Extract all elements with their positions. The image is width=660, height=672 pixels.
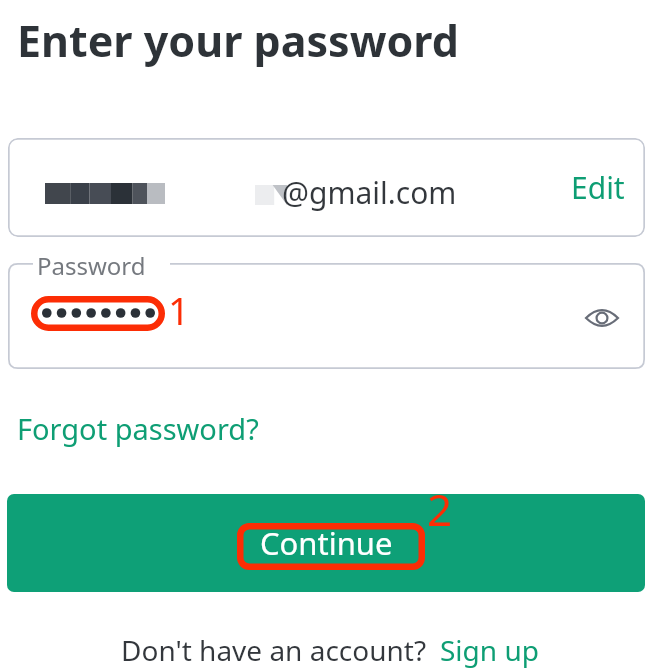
staticText: Enter your password — [17, 11, 459, 70]
button[interactable]: @gmail.com — [8, 138, 645, 237]
staticText: 2 — [427, 479, 453, 539]
staticText: Continue — [260, 522, 393, 564]
button[interactable]: Forgot password? — [8, 401, 268, 456]
staticText: Sign up — [440, 631, 539, 669]
button[interactable]: Edit — [551, 151, 645, 224]
button[interactable]: Show password — [578, 294, 626, 342]
staticText: Password — [37, 249, 146, 282]
staticText: @gmail.com — [282, 172, 457, 213]
button[interactable]: Sign up — [440, 631, 539, 669]
button[interactable]: Continue — [7, 494, 645, 592]
staticText: 1 — [168, 284, 190, 336]
staticText: Don't have an account? — [121, 631, 427, 669]
staticText: Forgot password? — [17, 409, 259, 448]
staticText: Edit — [571, 167, 625, 208]
